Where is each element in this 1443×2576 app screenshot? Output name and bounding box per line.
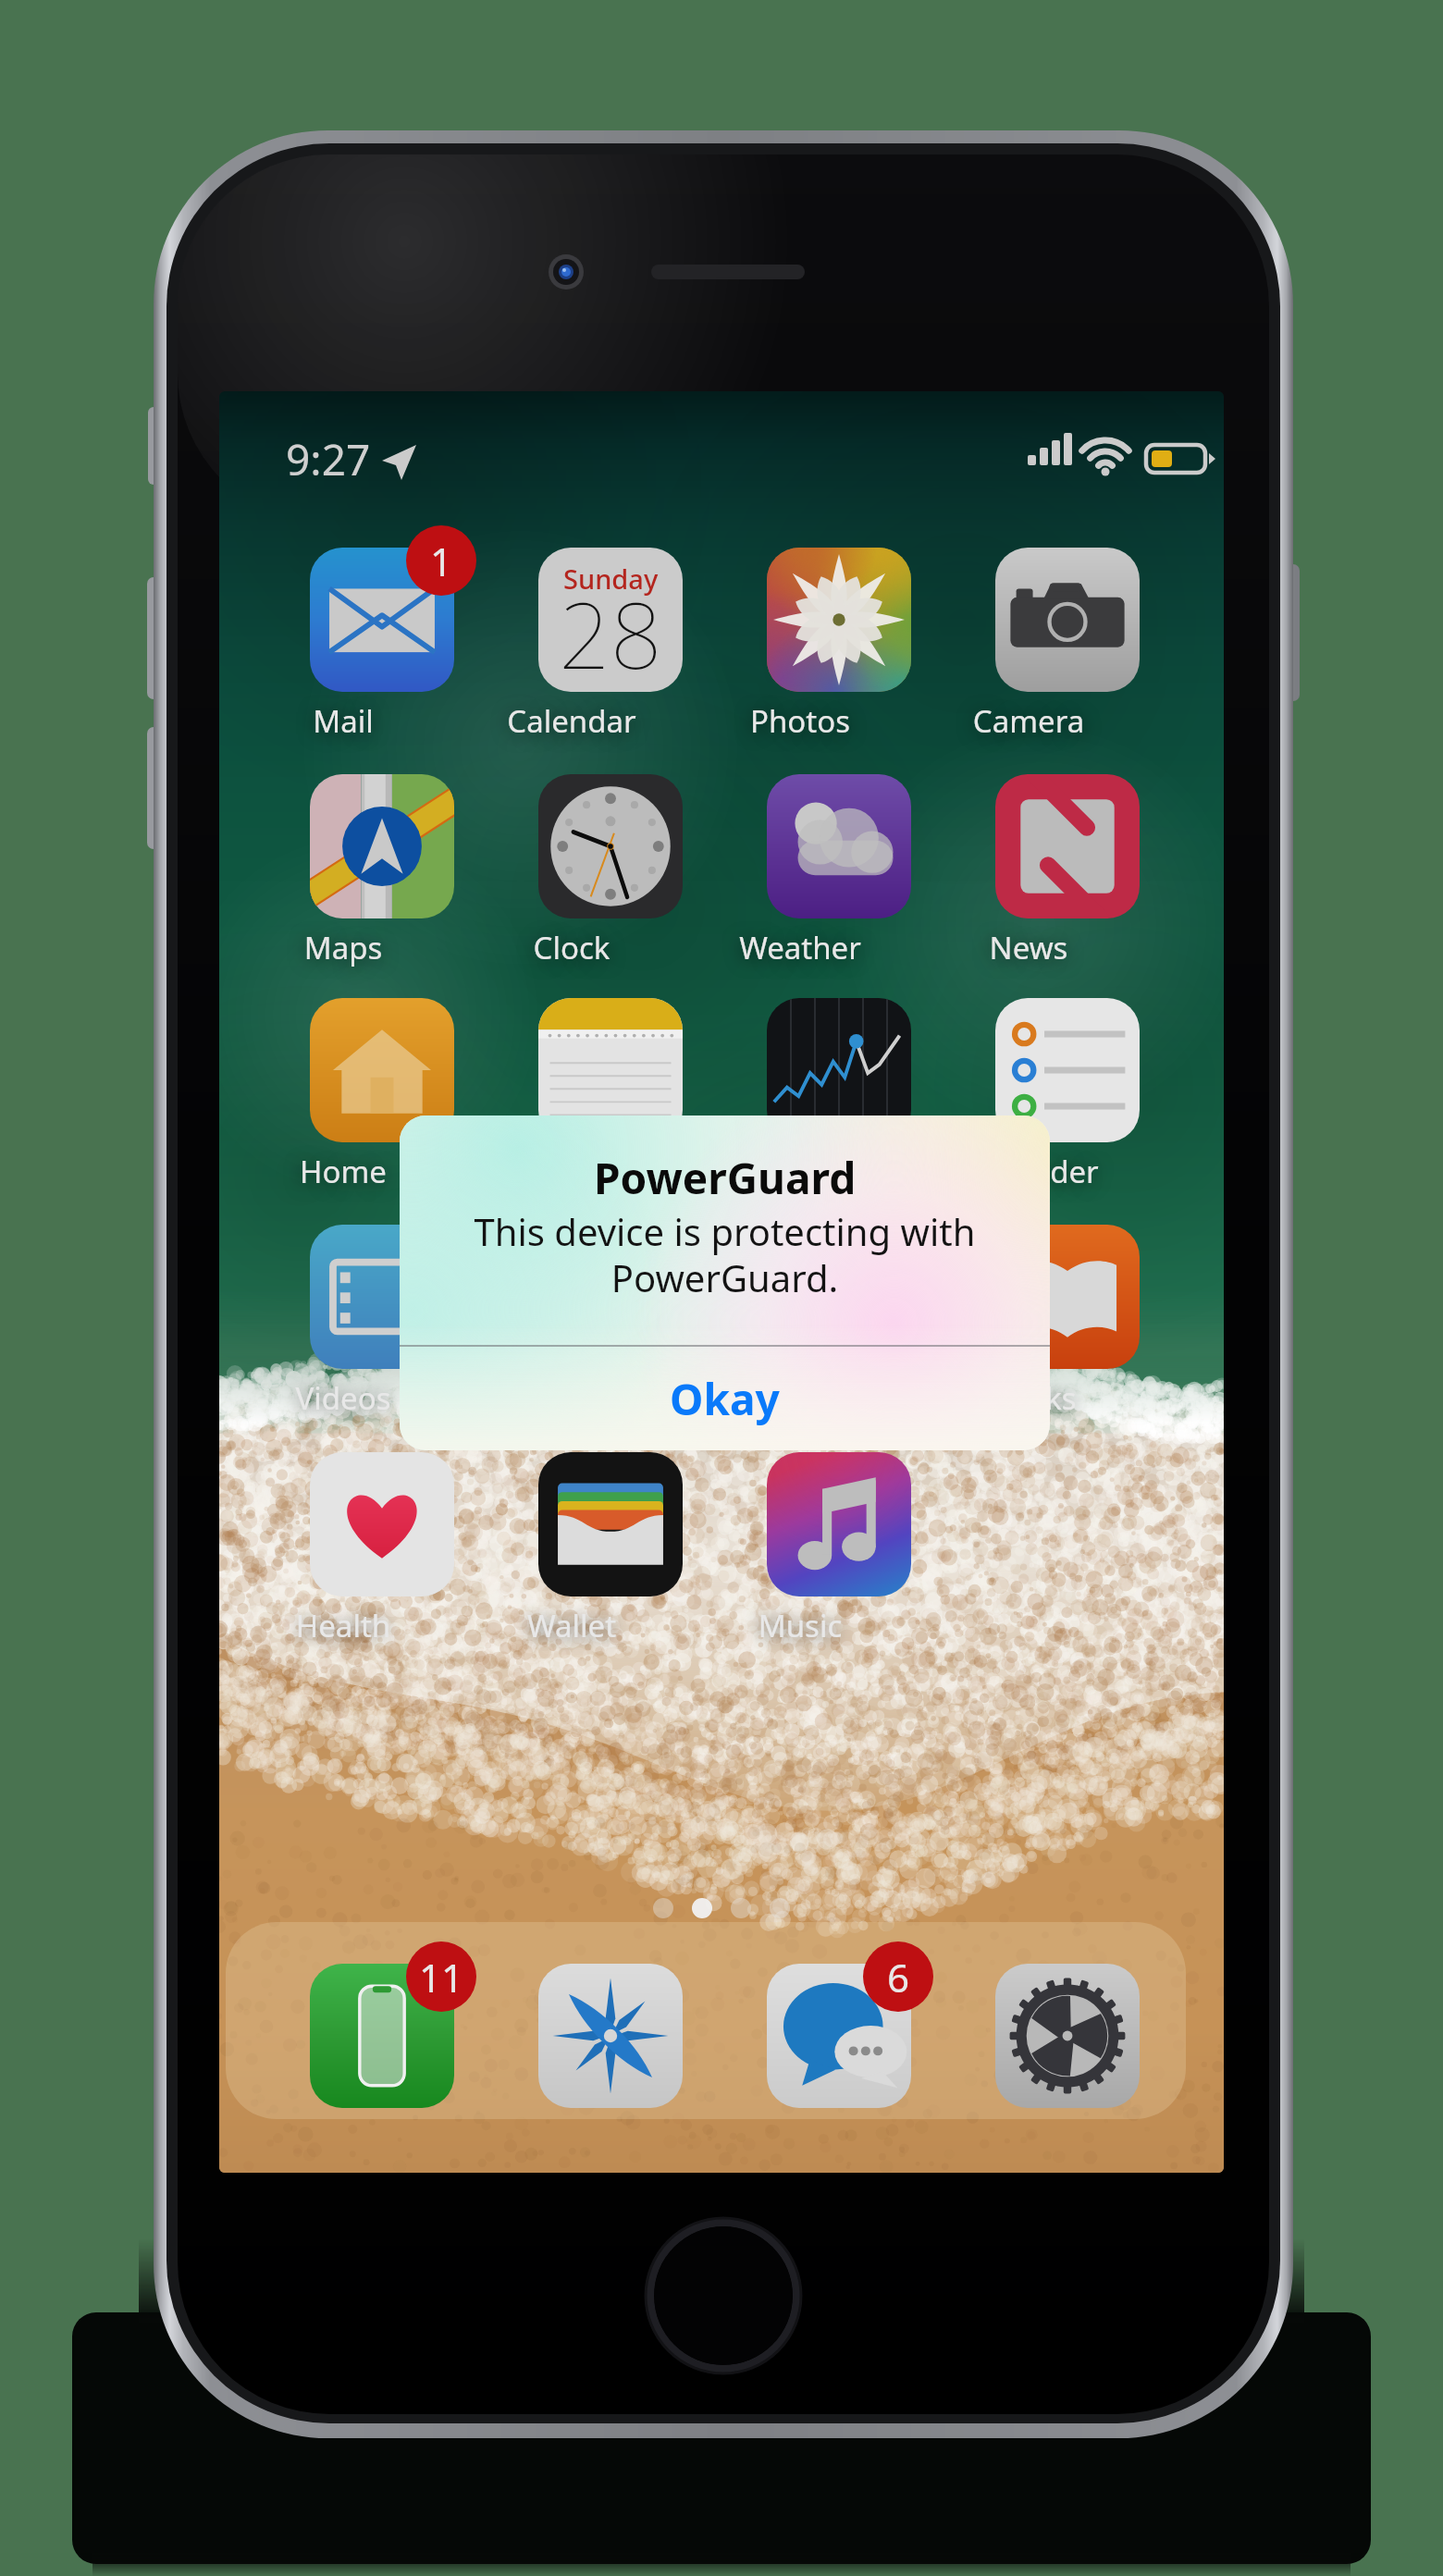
button[interactable]: Settings <box>995 1964 1140 2108</box>
staticText: 9:27 <box>286 430 371 488</box>
staticText: News <box>956 927 1101 968</box>
button[interactable]: Wallet <box>538 1452 683 1658</box>
staticText: App Store <box>728 1377 872 1419</box>
staticText: Videos <box>271 1377 415 1419</box>
staticText: Calendar <box>499 700 644 742</box>
button[interactable]: Stocks <box>767 998 911 1203</box>
staticText: Podcasts <box>499 1377 644 1419</box>
button[interactable]: Camera <box>995 548 1140 753</box>
staticText: 11 <box>419 1951 464 2003</box>
staticText: iBooks <box>956 1377 1101 1419</box>
button[interactable]: Okay <box>400 1347 1050 1450</box>
staticText: PowerGuard <box>594 1149 857 1207</box>
button[interactable]: Health <box>310 1452 454 1658</box>
staticText: 1 <box>430 535 453 587</box>
staticText: Notes <box>499 1151 644 1192</box>
button[interactable]: Weather <box>767 774 911 980</box>
button[interactable]: Page indicator <box>638 1880 805 1936</box>
button[interactable]: Clock <box>538 774 683 980</box>
button[interactable]: Home <box>310 998 454 1203</box>
button[interactable]: Music <box>767 1452 911 1658</box>
button[interactable]: Phone <box>310 1964 454 2108</box>
button[interactable]: Mail <box>310 548 454 753</box>
staticText: Mail <box>271 700 415 742</box>
staticText: 6 <box>887 1951 910 2003</box>
staticText: Camera <box>956 700 1101 742</box>
button[interactable]: Notes <box>538 998 683 1203</box>
button[interactable]: News <box>995 774 1140 980</box>
button[interactable]: Messages <box>767 1964 911 2108</box>
staticText: Wallet <box>499 1605 644 1646</box>
button[interactable]: App Store <box>767 1225 911 1430</box>
button[interactable]: Home <box>644 2216 803 2375</box>
staticText: This device is protecting with PowerGuar… <box>400 1206 1050 1303</box>
button[interactable]: Photos <box>767 548 911 753</box>
button[interactable]: Maps <box>310 774 454 980</box>
button[interactable]: Safari <box>538 1964 683 2108</box>
staticText: 28 <box>559 572 662 692</box>
staticText: Stocks <box>728 1151 872 1192</box>
staticText: Clock <box>499 927 644 968</box>
staticText: Reminders <box>956 1151 1101 1192</box>
button[interactable]: Reminders <box>995 998 1140 1203</box>
button[interactable]: Sunday <box>538 548 683 753</box>
staticText: Health <box>271 1605 415 1646</box>
staticText: Sunday <box>563 561 659 597</box>
staticText: Photos <box>728 700 872 742</box>
staticText: Weather <box>728 927 872 968</box>
staticText: Maps <box>271 927 415 968</box>
button[interactable]: Podcasts <box>538 1225 683 1430</box>
button[interactable]: Videos <box>310 1225 454 1430</box>
staticText: Home <box>271 1151 415 1192</box>
button[interactable]: iBooks <box>995 1225 1140 1430</box>
staticText: Music <box>728 1605 872 1646</box>
staticText: Okay <box>670 1370 780 1428</box>
